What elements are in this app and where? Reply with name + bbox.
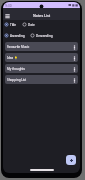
staticText: Title (10, 23, 16, 27)
button[interactable]: Ascending (4, 33, 25, 38)
staticText: Idea 💡 (7, 56, 18, 60)
button[interactable]: More options (71, 66, 77, 72)
staticText: My thoughts (7, 67, 25, 71)
button[interactable]: Shopping List (5, 75, 78, 84)
button[interactable]: More options (71, 44, 77, 50)
button[interactable]: Descending (30, 33, 53, 38)
button[interactable]: Menu (4, 12, 11, 19)
staticText: Shopping List (7, 78, 27, 82)
button[interactable]: My thoughts (5, 64, 78, 73)
staticText: Ascending (10, 34, 25, 38)
button[interactable]: Date (22, 22, 35, 27)
staticText: 9:30 (5, 3, 12, 8)
staticText: Date (28, 23, 35, 27)
staticText: Descending (36, 34, 53, 38)
button[interactable]: Title (4, 22, 16, 27)
button[interactable]: Idea 💡 (5, 53, 78, 62)
button[interactable]: More options (71, 55, 77, 61)
button[interactable]: Favourite Music (5, 42, 78, 51)
button[interactable]: More options (71, 77, 77, 83)
staticText: Notes List (33, 13, 51, 18)
staticText: Favourite Music (7, 45, 30, 49)
button[interactable]: Add note (66, 155, 76, 165)
